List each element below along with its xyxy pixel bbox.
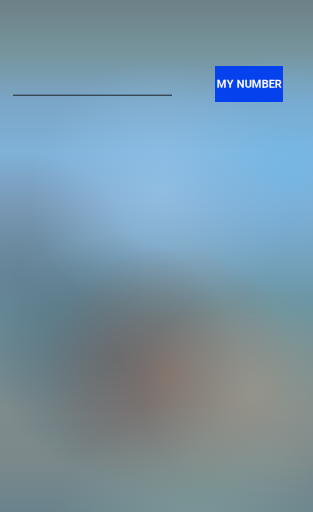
button[interactable]: MY NUMBER (215, 66, 283, 102)
staticText: MY NUMBER (216, 77, 281, 90)
button[interactable]: Phone number (13, 66, 172, 102)
